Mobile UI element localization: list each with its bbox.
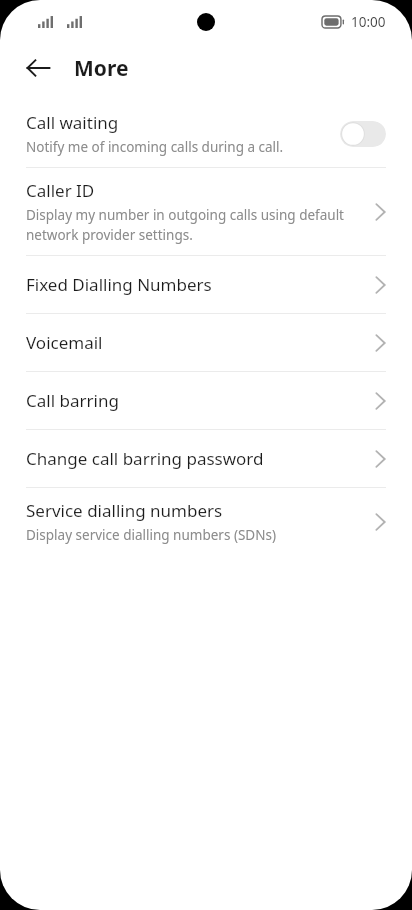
button[interactable]: Back xyxy=(20,50,56,86)
staticText: Caller ID xyxy=(26,179,95,202)
staticText: 10:00 xyxy=(351,13,386,31)
staticText: Display service dialling numbers (SDNs) xyxy=(26,526,276,544)
button[interactable]: Fixed Dialling Numbers xyxy=(0,256,412,313)
staticText: Notify me of incoming calls during a cal… xyxy=(26,138,284,156)
staticText: Voicemail xyxy=(26,331,103,354)
staticText: Service dialling numbers xyxy=(26,499,223,522)
button[interactable]: Call barring xyxy=(0,372,412,429)
button[interactable]: Service dialling numbers xyxy=(0,488,412,555)
staticText: Call waiting xyxy=(26,111,119,134)
button[interactable]: Call waiting toggle xyxy=(340,121,386,147)
button[interactable]: Call waiting xyxy=(0,100,412,167)
staticText: Display my number in outgoing calls usin… xyxy=(26,206,363,244)
staticText: Fixed Dialling Numbers xyxy=(26,273,212,296)
staticText: Call barring xyxy=(26,389,119,412)
staticText: Change call barring password xyxy=(26,447,264,470)
button[interactable]: Change call barring password xyxy=(0,430,412,487)
button[interactable]: Caller ID xyxy=(0,168,412,255)
button[interactable]: Voicemail xyxy=(0,314,412,371)
staticText: More xyxy=(74,54,129,83)
